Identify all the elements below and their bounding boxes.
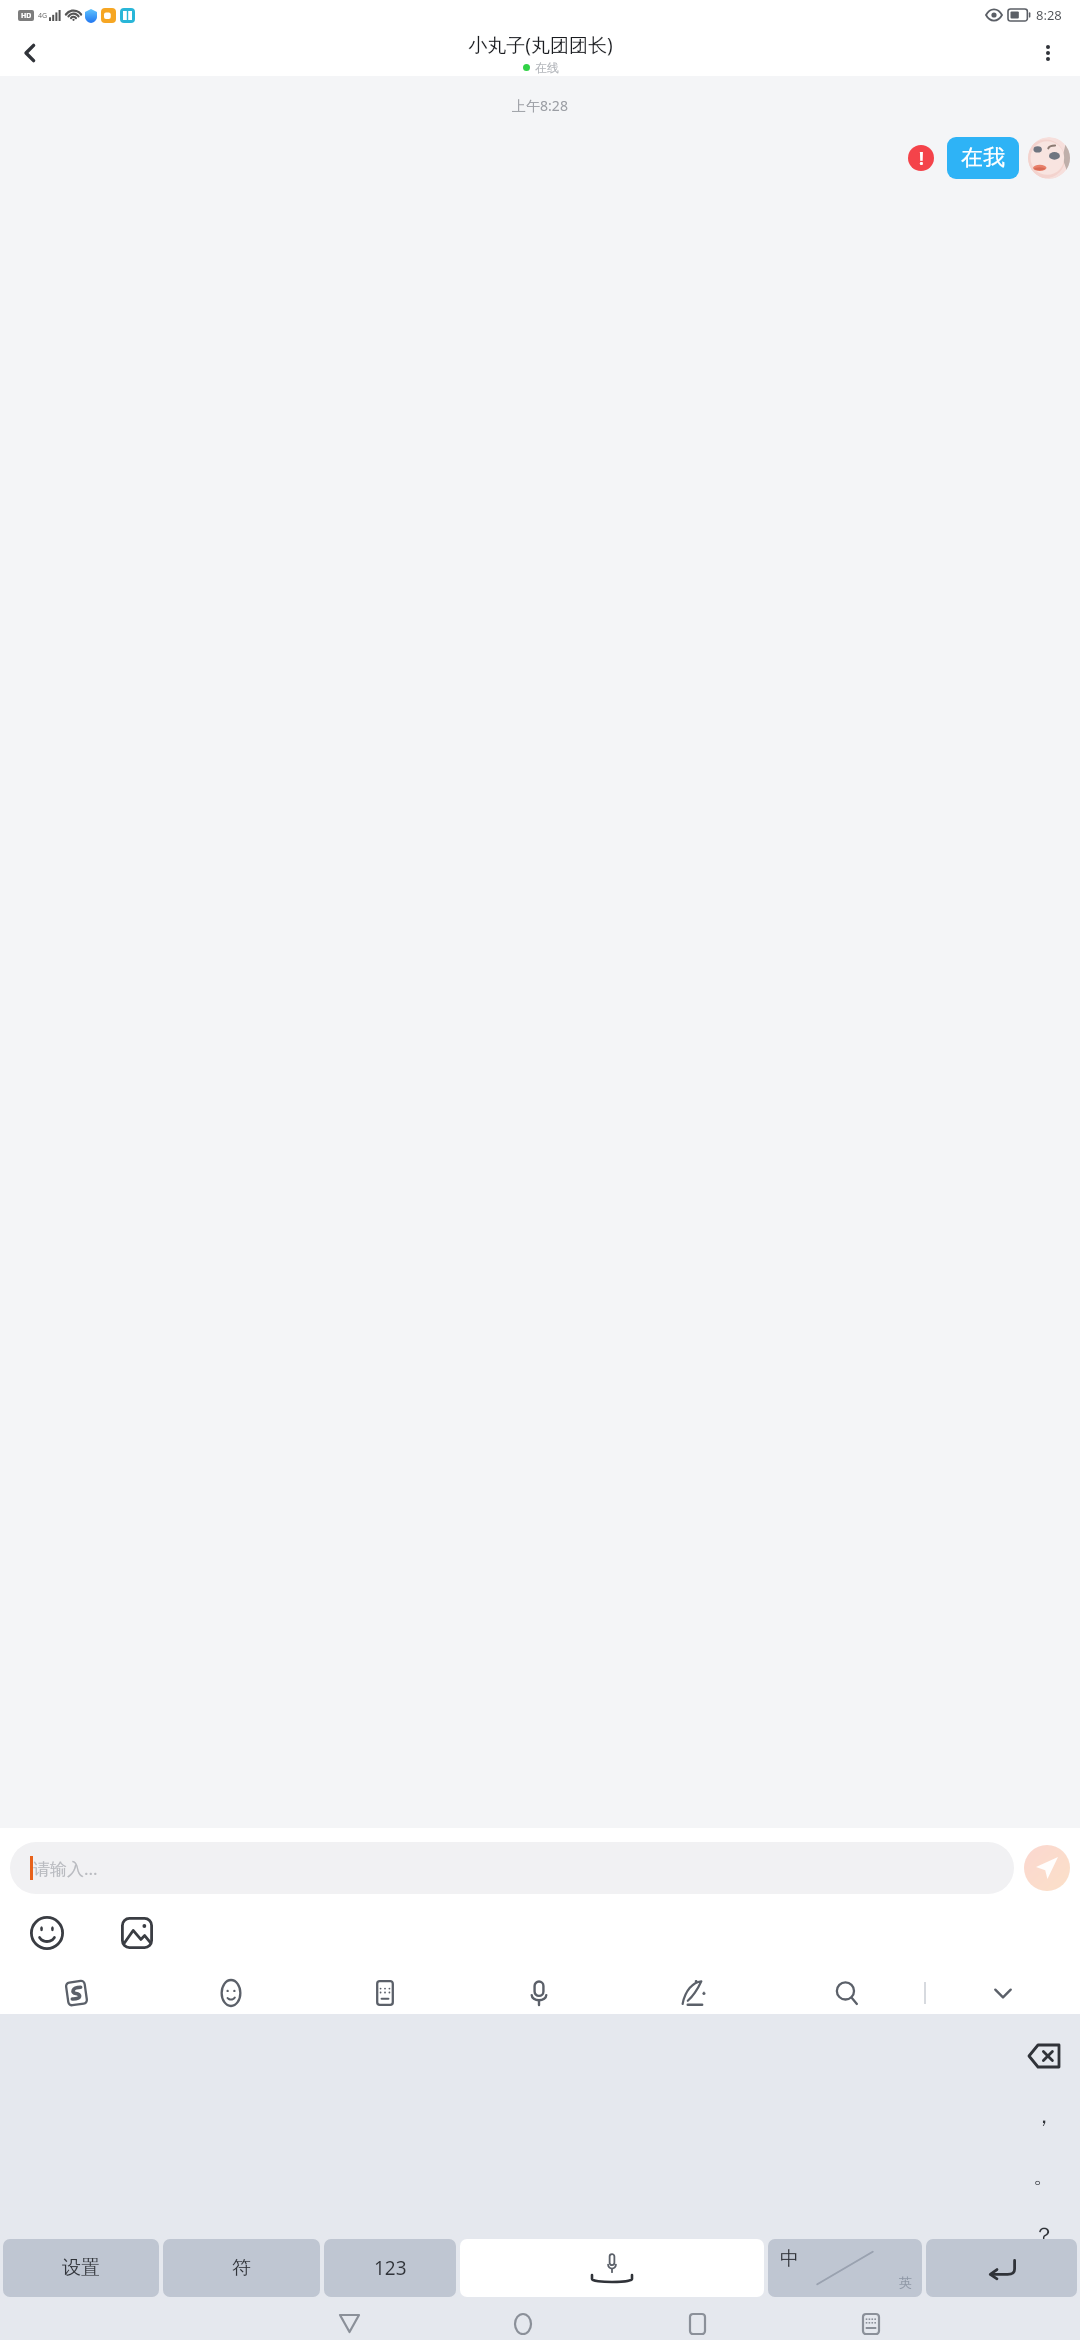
button[interactable]: Sogou	[0, 1972, 154, 2014]
button[interactable]: Enter	[926, 2239, 1077, 2297]
staticText: 中	[780, 2247, 799, 2271]
staticText: ？	[1033, 2222, 1055, 2250]
button[interactable]: ！	[1014, 2266, 1074, 2307]
button[interactable]: 设置	[3, 2239, 159, 2297]
staticText: 4G	[38, 11, 48, 21]
button[interactable]: 请输入...	[10, 1842, 1014, 1894]
staticText: ！	[1033, 2273, 1055, 2301]
staticText: !	[919, 147, 924, 170]
button[interactable]: Send	[1024, 1845, 1070, 1891]
staticText: ，	[1033, 2102, 1055, 2130]
button[interactable]: Back	[262, 2307, 436, 2340]
staticText: 符	[232, 2256, 251, 2280]
staticText: 。	[1033, 2162, 1055, 2190]
button[interactable]: Keyboard	[308, 1972, 462, 2014]
button[interactable]: Hide keyboard	[926, 1972, 1080, 2014]
button[interactable]: 小丸子(丸团团长)	[468, 32, 613, 75]
staticText: 在我	[961, 144, 1005, 172]
staticText: 请输入...	[33, 1857, 98, 1880]
button[interactable]: Emoji	[22, 1908, 72, 1958]
button[interactable]: ，	[1014, 2086, 1074, 2146]
staticText: 小丸子(丸团团长)	[468, 32, 613, 58]
staticText: 设置	[62, 2256, 100, 2280]
staticText: HD	[21, 11, 32, 21]
button[interactable]: Resend failed message	[908, 145, 934, 171]
button[interactable]: Emoji	[154, 1972, 308, 2014]
staticText: 123	[374, 2255, 407, 2281]
button[interactable]: ？	[1014, 2206, 1074, 2266]
button[interactable]: Voice input	[462, 1972, 616, 2014]
button[interactable]: Switch keyboard	[784, 2307, 958, 2340]
button[interactable]: Back	[6, 30, 54, 76]
button[interactable]: 。	[1014, 2146, 1074, 2206]
button[interactable]: 符	[163, 2239, 320, 2297]
staticText: 上午8:28	[0, 96, 1080, 115]
button[interactable]: Recents	[610, 2307, 784, 2340]
button[interactable]: Home	[436, 2307, 610, 2340]
staticText: 8:28	[1036, 6, 1062, 24]
button[interactable]: 123	[324, 2239, 456, 2297]
staticText: 在线	[535, 60, 559, 75]
button[interactable]: More options	[1024, 30, 1072, 76]
button[interactable]: Space	[460, 2239, 764, 2297]
staticText: 英	[899, 2274, 912, 2290]
button[interactable]: Backspace	[1014, 2026, 1074, 2086]
button[interactable]: Photos	[112, 1908, 162, 1958]
button[interactable]: 在我	[947, 137, 1019, 179]
button[interactable]: Avatar	[1028, 137, 1070, 179]
button[interactable]: Handwriting	[616, 1972, 770, 2014]
button[interactable]: Chinese English toggle	[768, 2239, 922, 2297]
button[interactable]: Search	[770, 1972, 924, 2014]
